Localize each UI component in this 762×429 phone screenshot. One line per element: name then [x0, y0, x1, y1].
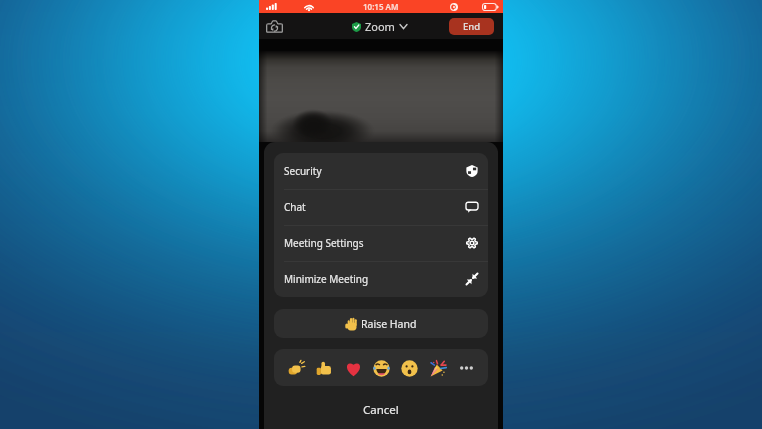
- staticText: Raise Hand: [361, 317, 417, 331]
- staticText: Security: [284, 164, 322, 178]
- button[interactable]: Thumbs up: [314, 358, 334, 378]
- button[interactable]: Laugh: [371, 358, 391, 378]
- button[interactable]: Chat: [274, 189, 488, 225]
- staticText: Minimize Meeting: [284, 272, 369, 286]
- button[interactable]: Meeting Settings: [274, 225, 488, 261]
- button[interactable]: Minimize Meeting: [274, 261, 488, 297]
- button[interactable]: Switch camera: [263, 15, 285, 37]
- button[interactable]: Raise Hand: [274, 309, 488, 338]
- button[interactable]: Zoom: [352, 19, 407, 34]
- button[interactable]: More reactions: [456, 358, 476, 378]
- button[interactable]: Cancel: [274, 386, 488, 429]
- staticText: Cancel: [363, 402, 399, 418]
- staticText: Zoom: [365, 19, 395, 34]
- button[interactable]: End: [449, 18, 494, 35]
- button[interactable]: Clap: [286, 358, 306, 378]
- staticText: End: [463, 20, 481, 33]
- staticText: 10:15 AM: [363, 1, 399, 12]
- staticText: Meeting Settings: [284, 236, 364, 250]
- button[interactable]: Surprised: [399, 358, 419, 378]
- button[interactable]: Security: [274, 153, 488, 189]
- button[interactable]: Heart: [343, 358, 363, 378]
- staticText: Chat: [284, 200, 306, 214]
- button[interactable]: Celebrate: [428, 358, 448, 378]
